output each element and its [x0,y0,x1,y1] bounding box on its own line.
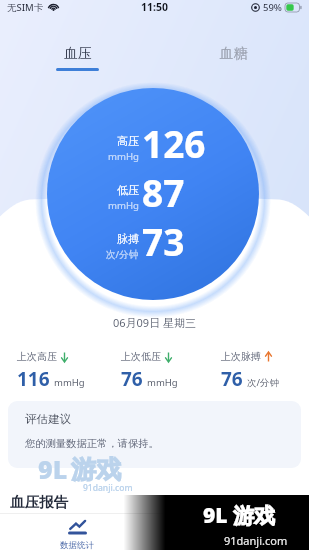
staticText: 血糖 [212,45,255,63]
button[interactable]: 评估建议 [8,401,301,468]
staticText: mmHg [108,199,139,212]
staticText: 血压报告 [10,493,68,511]
staticText: mmHg [147,376,178,389]
staticText: 73 [142,216,185,266]
staticText: 76 [221,366,243,392]
button[interactable]: 数据统计 [50,519,104,550]
button[interactable]: 血糖 [212,45,255,63]
button[interactable]: 血压 [56,45,99,71]
staticText: 脉搏 [117,232,139,246]
staticText: 上次脉搏 [221,350,261,363]
staticText: 9L [38,452,68,486]
staticText: 06月09日 星期三 [0,315,309,330]
staticText: 126 [142,118,206,168]
staticText: 次/分钟 [247,376,280,389]
staticText: 11:50 [141,0,168,14]
staticText: 游戏 [71,454,121,485]
staticText: 血压 [64,45,92,63]
staticText: 9L [203,501,228,530]
staticText: 91danji.com [83,482,133,494]
staticText: mmHg [108,150,139,163]
button[interactable] [47,88,259,300]
staticText: mmHg [54,376,85,389]
staticText: 87 [142,167,185,217]
staticText: 次/分钟 [106,248,139,261]
button[interactable]: 上次低压 [121,350,211,392]
staticText: 59% [263,1,282,14]
staticText: 您的测量数据正常，请保持。 [25,437,159,450]
staticText: 无SIM卡 [7,1,44,14]
button[interactable]: 上次脉搏 [221,350,309,392]
staticText: 上次低压 [121,350,161,363]
staticText: 76 [121,366,143,392]
staticText: 数据统计 [60,540,94,550]
staticText: 上次高压 [17,350,57,363]
staticText: 游戏 [233,503,275,529]
staticText: 116 [17,366,50,392]
staticText: 评估建议 [25,412,71,426]
staticText: 低压 [117,183,139,197]
staticText: 91danji.com [224,533,288,548]
staticText: 高压 [117,134,139,148]
button[interactable]: 上次高压 [17,350,107,392]
